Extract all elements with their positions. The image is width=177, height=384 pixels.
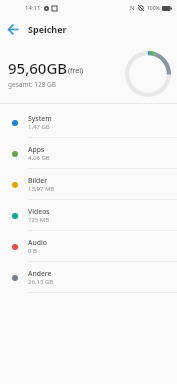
staticText: (frei) [68, 66, 84, 76]
staticText: 95,60GB [8, 58, 68, 78]
staticText: Audio [28, 238, 47, 247]
staticText: Videos [28, 207, 50, 216]
button[interactable]: System [0, 107, 177, 138]
button[interactable]: Apps [0, 138, 177, 169]
button[interactable]: Videos [0, 200, 177, 231]
staticText: 13,97 MB [28, 185, 55, 193]
button[interactable]: Bilder [0, 169, 177, 200]
staticText: 4,06 GB [28, 154, 50, 162]
staticText: System [28, 114, 52, 123]
staticText: Bilder [28, 176, 48, 185]
staticText: 0 B [28, 247, 37, 255]
button[interactable]: Audio [0, 231, 177, 262]
button[interactable] [0, 16, 26, 42]
staticText: Andere [28, 269, 52, 278]
staticText: 100% [147, 5, 160, 12]
staticText: N [130, 4, 135, 12]
staticText: Speicher [28, 23, 67, 35]
staticText: 1,47 GB [28, 123, 50, 131]
staticText: 725 MB [28, 216, 50, 224]
button[interactable]: Andere [0, 262, 177, 293]
staticText: 14:11 [25, 4, 41, 12]
staticText: Apps [28, 145, 45, 154]
staticText: gesamt: 128 GB [8, 80, 57, 89]
staticText: 26,13 GB [28, 278, 54, 286]
